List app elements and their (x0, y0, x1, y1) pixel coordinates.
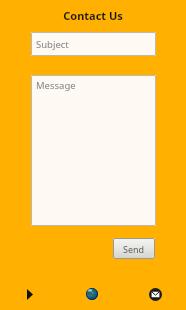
staticText: Message (36, 79, 76, 92)
button[interactable]: Website (81, 283, 103, 305)
staticText: Send (123, 243, 145, 255)
button[interactable]: Subject (31, 32, 156, 56)
button[interactable]: Send (113, 238, 155, 259)
button[interactable]: Email (144, 283, 166, 305)
staticText: Contact Us (0, 8, 186, 23)
button[interactable]: Play (19, 283, 41, 305)
button[interactable]: Message (31, 75, 156, 226)
staticText: Subject (36, 38, 69, 51)
